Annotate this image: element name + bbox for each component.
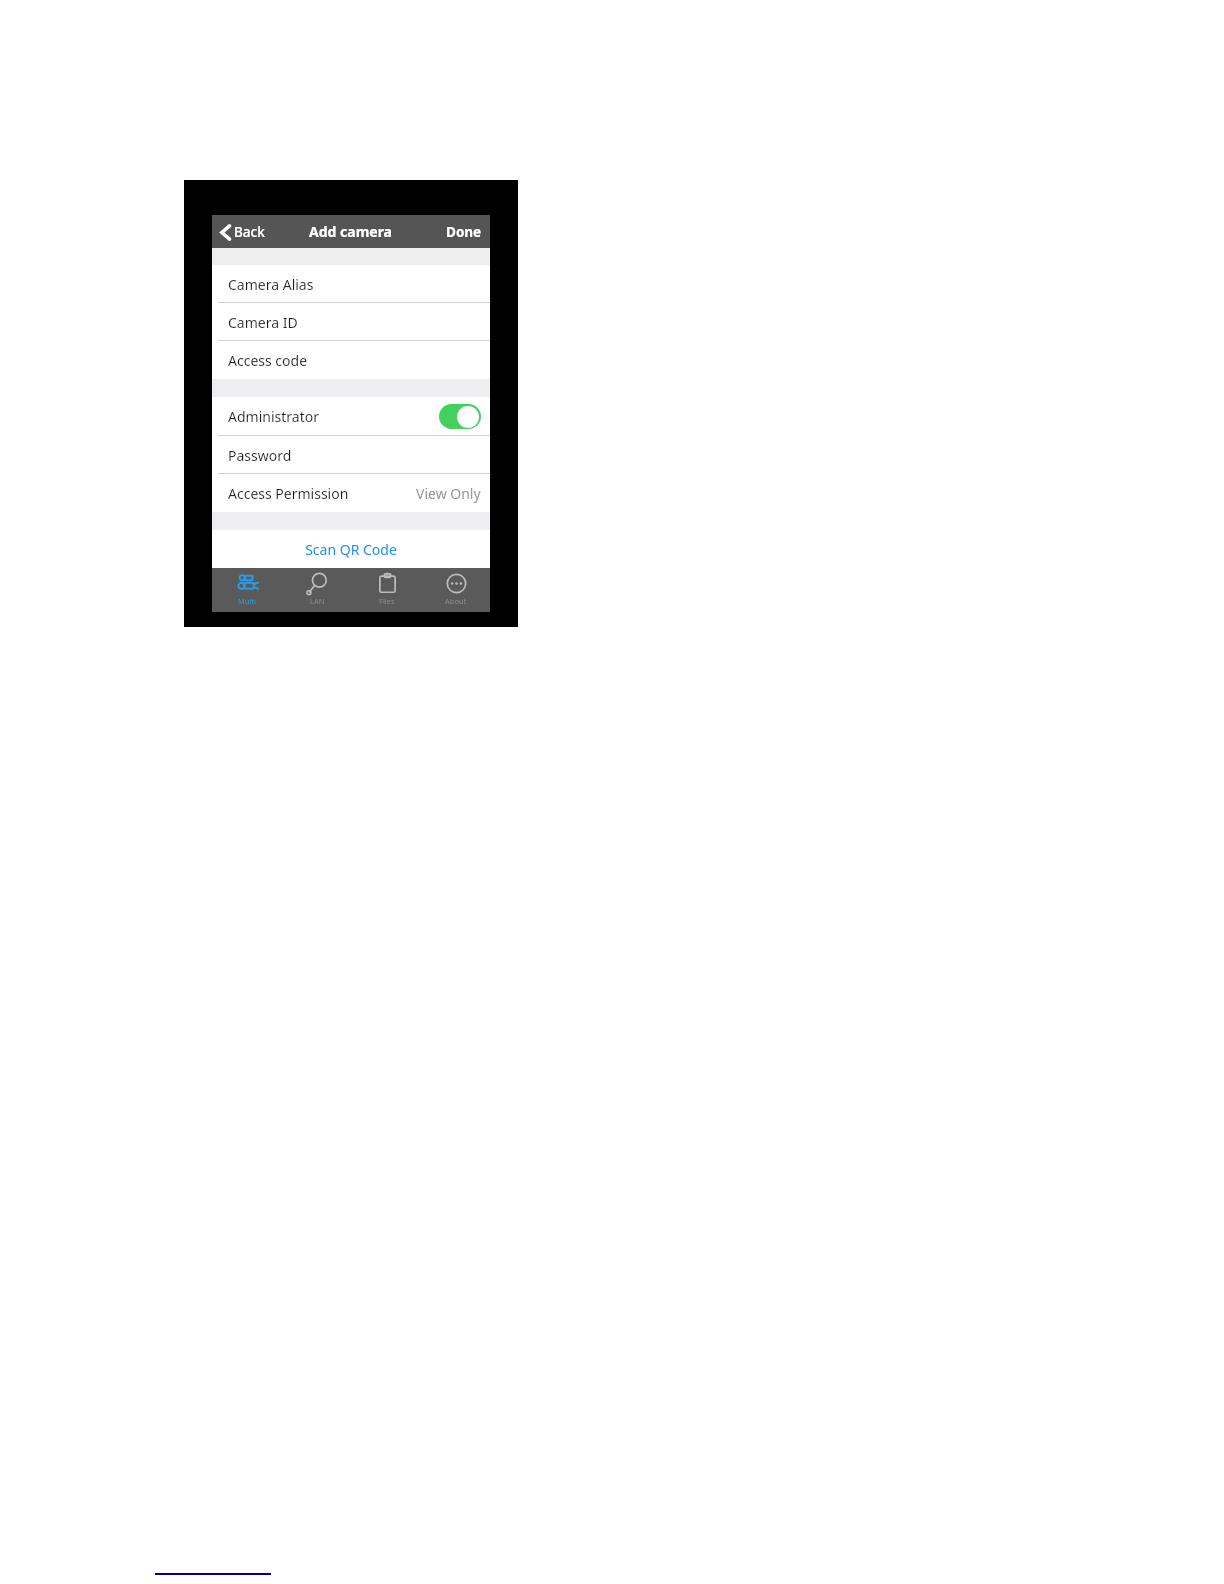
button[interactable]: Password: [212, 436, 490, 474]
staticText: Multi: [238, 596, 257, 606]
button[interactable]: Back: [218, 219, 268, 245]
button[interactable]: Access code: [212, 341, 490, 379]
staticText: Administrator: [228, 407, 319, 426]
button[interactable]: Multi: [212, 568, 282, 612]
staticText: Done: [446, 223, 482, 241]
button[interactable]: Scan QR Code: [212, 530, 490, 568]
button[interactable]: Camera Alias: [212, 265, 490, 303]
staticText: Camera Alias: [228, 275, 314, 294]
button[interactable]: Files: [352, 568, 422, 612]
button[interactable]: Access Permission: [212, 474, 490, 512]
staticText: Password: [228, 446, 292, 465]
staticText: Back: [234, 223, 265, 241]
button[interactable]: Administrator: [212, 397, 490, 436]
staticText: LAN: [310, 596, 325, 606]
staticText: Access Permission: [228, 484, 349, 503]
staticText: About: [445, 596, 467, 606]
button[interactable]: Done: [443, 218, 485, 246]
staticText: Add camera: [309, 222, 393, 241]
button[interactable]: Administrator toggle: [439, 404, 481, 429]
staticText: Scan QR Code: [305, 540, 397, 559]
staticText: Files: [379, 596, 395, 606]
staticText: View Only: [416, 484, 481, 503]
staticText: Access code: [228, 351, 308, 370]
staticText: Camera ID: [228, 313, 298, 332]
button[interactable]: Camera ID: [212, 303, 490, 341]
button[interactable]: LAN: [282, 568, 352, 612]
button[interactable]: About: [422, 568, 490, 612]
